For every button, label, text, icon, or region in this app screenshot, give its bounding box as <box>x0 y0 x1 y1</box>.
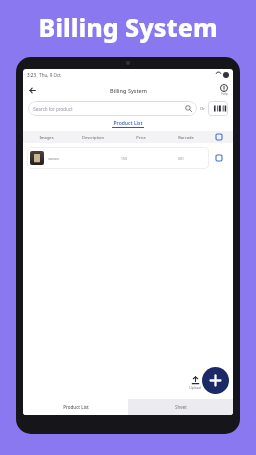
button[interactable]: Help <box>220 84 228 96</box>
staticText: Billing System <box>38 10 218 44</box>
staticText: Help <box>221 92 228 96</box>
staticText: Description <box>82 135 104 140</box>
staticText: 150 <box>121 156 127 161</box>
staticText: Search for product <box>33 106 73 112</box>
button[interactable]: wwww <box>27 147 209 169</box>
button[interactable]: Search for product <box>28 101 197 116</box>
staticText: Product List <box>63 404 89 410</box>
button[interactable]: Sheet <box>128 399 233 415</box>
staticText: Or <box>200 106 205 111</box>
button[interactable]: Add product <box>202 367 229 394</box>
staticText: Product List <box>113 120 143 127</box>
button[interactable]: Upload <box>189 376 201 390</box>
button[interactable]: Back <box>26 84 38 96</box>
staticText: wwww <box>48 156 59 161</box>
staticText: Barcode <box>178 135 194 140</box>
staticText: Billing System <box>110 87 147 94</box>
staticText: Thu, 9 Oct <box>39 72 61 78</box>
staticText: Price <box>136 135 146 140</box>
staticText: 001 <box>178 156 184 161</box>
button[interactable] <box>214 153 224 163</box>
button[interactable]: Scan barcode <box>208 101 228 116</box>
staticText: Images <box>39 135 54 140</box>
staticText: Upload <box>189 385 201 390</box>
button[interactable]: Product List <box>23 399 128 415</box>
staticText: Sheet <box>175 404 187 410</box>
button[interactable]: Product List <box>112 120 144 128</box>
staticText: 3:23 <box>27 72 36 78</box>
